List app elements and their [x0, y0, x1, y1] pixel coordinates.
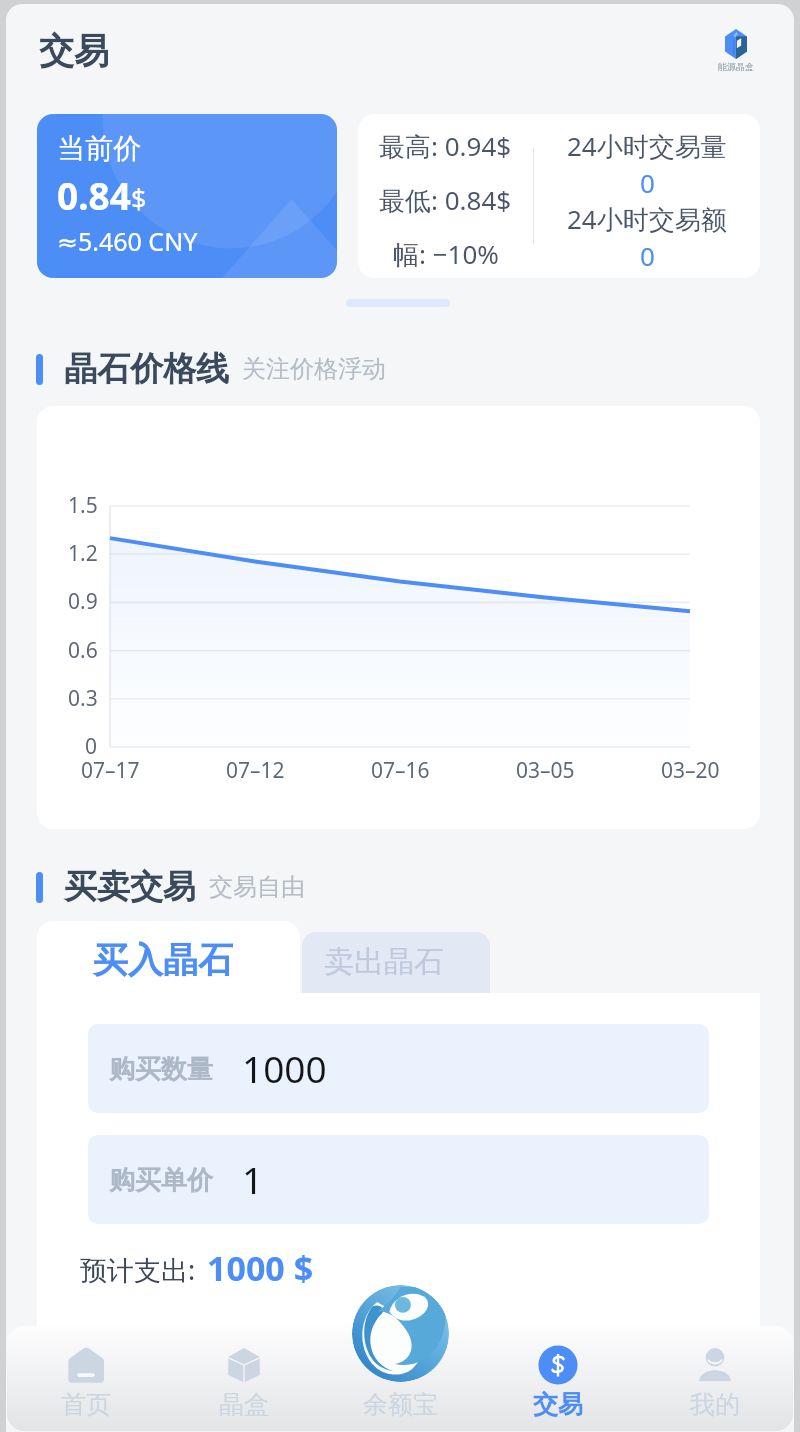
- staticText: 预计支出:: [80, 1251, 196, 1288]
- button[interactable]: Profile: [636, 1326, 793, 1431]
- staticText: 0: [640, 165, 655, 200]
- button[interactable]: 卖出晶石: [302, 932, 490, 993]
- staticText: 0: [85, 732, 98, 761]
- staticText: 1.2: [68, 539, 98, 568]
- staticText: 24小时交易量: [567, 128, 727, 164]
- staticText: 幅: −10%: [393, 236, 499, 272]
- staticText: 0.9: [68, 587, 98, 616]
- staticText: 买卖交易: [64, 866, 196, 908]
- staticText: 07–12: [226, 756, 285, 785]
- button[interactable]: Home: [7, 1326, 165, 1431]
- staticText: 1000 $: [207, 1245, 314, 1291]
- staticText: $: [131, 180, 147, 217]
- staticText: 关注价格浮动: [242, 354, 386, 384]
- staticText: 余额宝: [363, 1389, 438, 1420]
- button[interactable]: Yuebao: [322, 1326, 479, 1431]
- staticText: 03–05: [516, 756, 575, 785]
- staticText: 03–20: [661, 756, 720, 785]
- staticText: 最高: 0.94$: [379, 128, 512, 164]
- staticText: 交易: [533, 1389, 583, 1420]
- staticText: 我的: [690, 1389, 740, 1420]
- staticText: 晶盒: [219, 1389, 269, 1420]
- staticText: 0: [640, 238, 655, 273]
- staticText: 晶石价格线: [64, 348, 229, 390]
- staticText: 最低: 0.84$: [379, 182, 512, 218]
- button[interactable]: Yuebao: [352, 1285, 449, 1382]
- staticText: ≈5.460 CNY: [57, 224, 198, 258]
- staticText: 24小时交易额: [567, 201, 727, 237]
- staticText: 购买单价: [109, 1164, 213, 1197]
- staticText: 卖出晶石: [324, 943, 444, 981]
- button[interactable]: 购买单价: [88, 1135, 709, 1224]
- button[interactable]: 买入晶石: [37, 921, 300, 993]
- staticText: 当前价: [57, 131, 141, 166]
- staticText: 0.84: [57, 170, 131, 220]
- staticText: 0.6: [68, 636, 98, 665]
- button[interactable]: Trade: [479, 1326, 636, 1431]
- staticText: 1000: [242, 1043, 327, 1093]
- staticText: 07–17: [81, 756, 140, 785]
- staticText: 1: [242, 1154, 264, 1204]
- staticText: 首页: [61, 1389, 111, 1420]
- staticText: 07–16: [371, 756, 430, 785]
- staticText: 购买数量: [109, 1053, 213, 1086]
- staticText: 交易自由: [209, 872, 305, 902]
- button[interactable]: 当前价: [37, 114, 337, 278]
- staticText: 能源晶盒: [718, 61, 754, 72]
- staticText: 0.3: [68, 684, 98, 713]
- button[interactable]: Crystal box: [165, 1326, 322, 1431]
- button[interactable]: 购买数量: [88, 1024, 709, 1113]
- staticText: 1.5: [68, 491, 98, 520]
- staticText: 交易: [39, 29, 109, 73]
- staticText: 买入晶石: [93, 938, 233, 982]
